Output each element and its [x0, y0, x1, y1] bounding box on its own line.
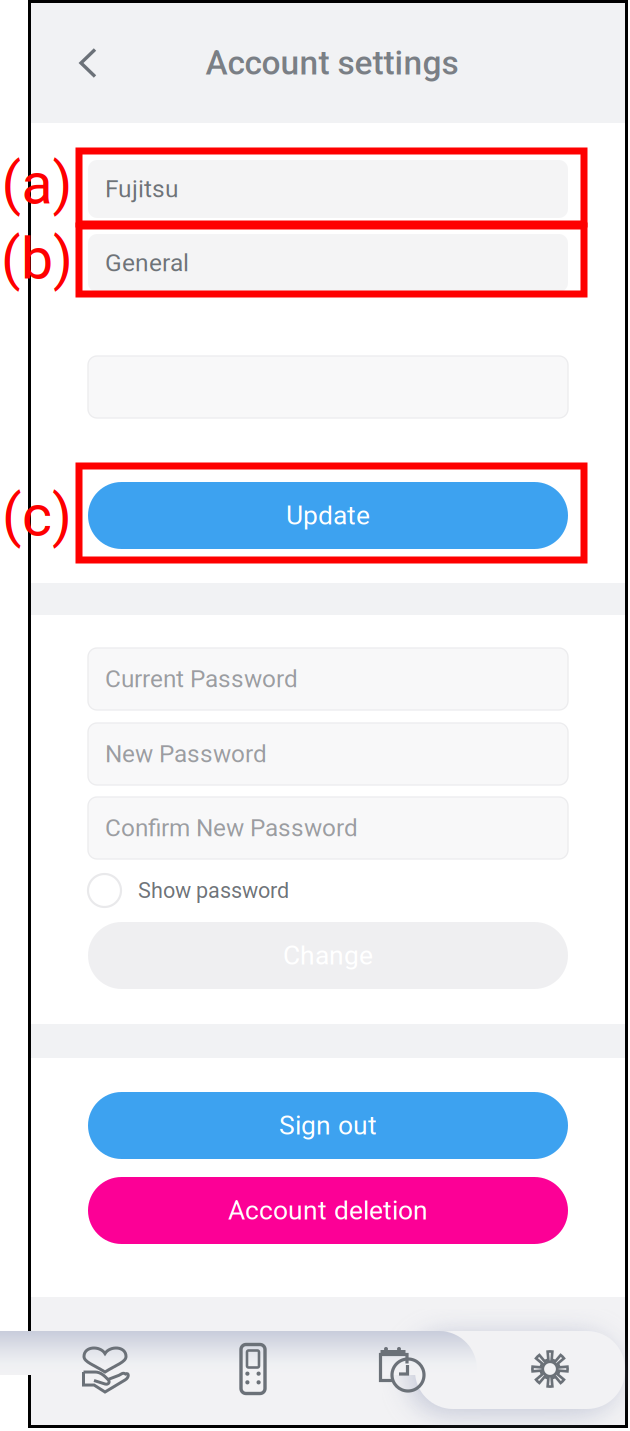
staticText: New Password: [105, 740, 267, 768]
staticText: Confirm New Password: [105, 814, 358, 842]
staticText: Change: [283, 940, 373, 971]
staticText: Show password: [138, 878, 289, 903]
staticText: General: [105, 249, 189, 277]
button[interactable]: Change: [88, 922, 568, 989]
button[interactable]: Schedule: [327, 1305, 475, 1431]
staticText: Sign out: [279, 1110, 377, 1141]
button[interactable]: Show password: [88, 874, 568, 907]
staticText: (a): [1, 150, 72, 217]
button[interactable]: Care: [31, 1305, 179, 1431]
staticText: Current Password: [105, 665, 298, 693]
button[interactable]: Remote: [179, 1305, 327, 1431]
staticText: Fujitsu: [105, 175, 179, 203]
button[interactable]: Update: [88, 482, 568, 549]
button[interactable]: Settings: [475, 1305, 625, 1431]
button[interactable]: Sign out: [88, 1092, 568, 1159]
staticText: (c): [2, 482, 72, 549]
staticText: Account settings: [205, 43, 458, 83]
button[interactable]: Back: [57, 32, 119, 94]
staticText: Update: [286, 500, 370, 531]
button[interactable]: Account deletion: [88, 1177, 568, 1244]
staticText: Account deletion: [228, 1195, 428, 1226]
staticText: (b): [1, 225, 73, 292]
